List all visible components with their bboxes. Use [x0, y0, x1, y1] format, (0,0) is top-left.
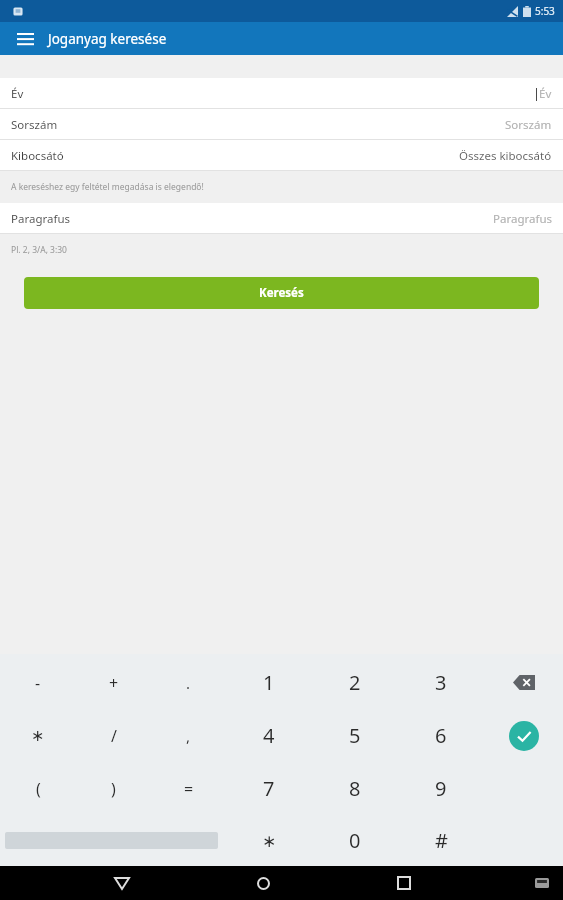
- button[interactable]: (: [0, 762, 76, 815]
- button[interactable]: 9: [398, 762, 484, 815]
- staticText: A kereséshez egy feltétel megadása is el…: [11, 181, 204, 193]
- staticText: 0: [349, 827, 361, 854]
- button[interactable]: /: [76, 709, 151, 762]
- button[interactable]: 7: [226, 762, 312, 815]
- button[interactable]: 2: [312, 656, 398, 709]
- staticText: 5:53: [535, 4, 555, 18]
- staticText: .: [186, 673, 191, 693]
- button[interactable]: .: [151, 656, 226, 709]
- button[interactable]: 1: [226, 656, 312, 709]
- staticText: #: [435, 827, 448, 854]
- button[interactable]: 6: [398, 709, 484, 762]
- button[interactable]: Switch keyboard: [525, 866, 559, 900]
- button[interactable]: Keresés: [24, 277, 539, 309]
- button[interactable]: Paragrafus: [0, 203, 563, 234]
- staticText: ∗: [262, 831, 277, 851]
- staticText: 9: [435, 775, 447, 802]
- button[interactable]: ∗: [0, 709, 76, 762]
- staticText: Joganyag keresése: [48, 30, 167, 48]
- staticText: 6: [435, 722, 447, 749]
- staticText: Paragrafus: [493, 211, 552, 227]
- button[interactable]: Backspace: [484, 656, 563, 709]
- button[interactable]: Recent apps: [384, 866, 424, 900]
- staticText: =: [184, 778, 194, 800]
- staticText: /: [111, 725, 117, 747]
- staticText: Összes kibocsátó: [459, 148, 552, 164]
- staticText: ): [111, 778, 116, 800]
- button[interactable]: ,: [151, 709, 226, 762]
- staticText: 7: [263, 775, 275, 802]
- staticText: Kibocsátó: [11, 148, 64, 164]
- button[interactable]: Kibocsátó: [0, 140, 563, 171]
- staticText: -: [35, 672, 41, 694]
- staticText: Év: [11, 86, 24, 102]
- button[interactable]: Év: [0, 78, 563, 109]
- staticText: 3: [435, 669, 447, 696]
- staticText: 1: [263, 669, 275, 696]
- staticText: 2: [349, 669, 361, 696]
- button[interactable]: ∗: [226, 815, 312, 866]
- button[interactable]: ): [76, 762, 151, 815]
- staticText: Sorszám: [11, 117, 58, 133]
- staticText: ,: [186, 726, 191, 746]
- button[interactable]: #: [398, 815, 484, 866]
- staticText: 4: [263, 722, 275, 749]
- button[interactable]: 8: [312, 762, 398, 815]
- staticText: Pl. 2, 3/A, 3:30: [11, 244, 67, 256]
- button[interactable]: Enter: [484, 709, 563, 762]
- staticText: 8: [349, 775, 361, 802]
- button[interactable]: Back: [102, 866, 142, 900]
- button[interactable]: 4: [226, 709, 312, 762]
- button[interactable]: 0: [312, 815, 398, 866]
- staticText: Sorszám: [505, 117, 552, 133]
- staticText: +: [109, 672, 119, 694]
- staticText: Év: [539, 86, 552, 102]
- staticText: 5: [349, 722, 361, 749]
- staticText: ∗: [31, 726, 45, 745]
- button[interactable]: Home: [243, 866, 283, 900]
- button[interactable]: 3: [398, 656, 484, 709]
- button[interactable]: Sorszám: [0, 109, 563, 140]
- staticText: Paragrafus: [11, 211, 70, 227]
- staticText: (: [36, 778, 41, 800]
- button[interactable]: Space: [0, 815, 226, 866]
- button[interactable]: 5: [312, 709, 398, 762]
- button[interactable]: -: [0, 656, 76, 709]
- button[interactable]: =: [151, 762, 226, 815]
- button[interactable]: Menu: [10, 24, 40, 54]
- staticText: Keresés: [259, 285, 304, 301]
- button[interactable]: +: [76, 656, 151, 709]
